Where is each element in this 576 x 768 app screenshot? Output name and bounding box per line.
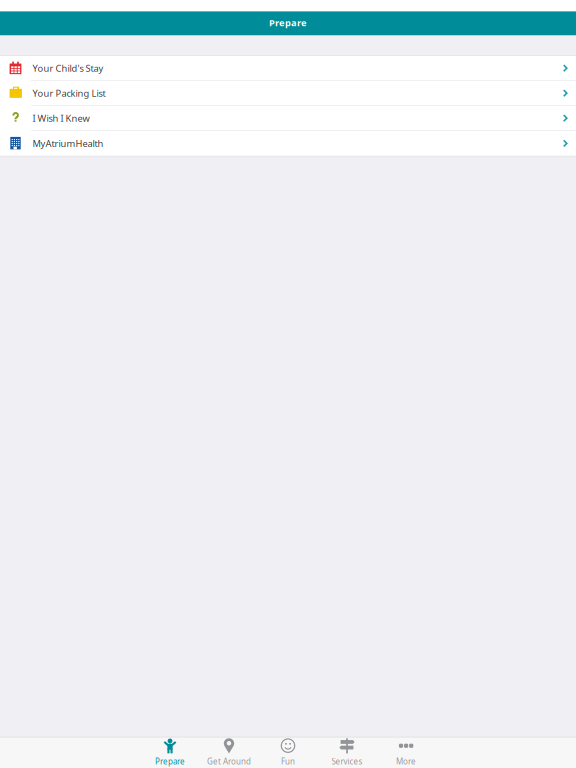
button[interactable]: More [376, 737, 435, 767]
button[interactable]: Prepare [140, 737, 199, 767]
button[interactable]: Your Packing List [0, 81, 576, 106]
staticText: Your Child's Stay [32, 62, 103, 74]
staticText: Prepare [155, 756, 185, 767]
staticText: MyAtriumHealth [32, 137, 103, 150]
staticText: Your Packing List [32, 87, 105, 99]
staticText: Get Around [207, 756, 251, 767]
button[interactable]: Get Around [199, 737, 258, 767]
staticText: Fun [281, 756, 295, 767]
button[interactable]: Your Child's Stay [0, 56, 576, 81]
button[interactable]: Services [317, 737, 376, 767]
staticText: I Wish I Knew [32, 112, 89, 124]
staticText: Services [331, 756, 362, 767]
staticText: Prepare [269, 16, 307, 29]
staticText: More [396, 756, 416, 767]
button[interactable]: MyAtriumHealth [0, 131, 576, 156]
button[interactable]: I Wish I Knew [0, 106, 576, 131]
button[interactable]: Fun [258, 737, 317, 767]
